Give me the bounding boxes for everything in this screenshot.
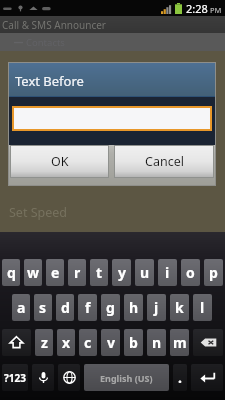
button[interactable]: n [147,329,166,356]
staticText: t [96,263,103,282]
button[interactable]: OK [11,146,108,177]
staticText: English (US) [100,372,153,384]
staticText: m [173,333,187,352]
button[interactable]: Cancel [115,146,213,177]
staticText: r [74,263,81,282]
staticText: z [41,333,48,352]
staticText: . [178,368,182,387]
staticText: h [129,298,139,317]
staticText: q [7,263,16,282]
staticText: f [85,298,91,317]
button[interactable]: w [24,259,42,286]
button[interactable]: Change keyboard language [58,364,80,391]
staticText: Cancel [145,153,184,170]
button[interactable]: d [56,294,74,321]
button[interactable]: h [124,294,143,321]
staticText: b [129,333,138,352]
button[interactable]: Delete [193,329,223,356]
button[interactable]: q [2,259,20,286]
staticText: l [200,298,205,317]
button[interactable]: e [46,259,64,286]
staticText: k [175,298,184,317]
button[interactable]: Voice input [32,364,54,391]
button[interactable]: p [204,259,223,286]
button[interactable]: b [124,329,143,356]
button[interactable]: u [135,259,154,286]
button[interactable]: Text Before [9,63,215,97]
staticText: o [186,263,195,282]
staticText: s [39,298,47,317]
staticText: PM [210,5,222,15]
button[interactable]: v [101,329,120,356]
button[interactable]: z [35,329,53,356]
staticText: v [107,333,115,352]
button[interactable]: c [79,329,97,356]
button[interactable]: Shift [2,329,31,356]
staticText: p [209,263,218,282]
staticText: Contacts [26,36,65,49]
staticText: a [17,298,26,317]
button[interactable]: Contacts [14,36,65,49]
staticText: g [106,298,115,317]
staticText: n [152,333,162,352]
button[interactable]: x [57,329,75,356]
button[interactable]: i [158,259,177,286]
staticText: e [51,263,60,282]
button[interactable]: m [170,329,189,356]
button[interactable]: t [90,259,108,286]
button[interactable]: o [181,259,200,286]
button[interactable]: k [170,294,189,321]
button[interactable]: s [34,294,52,321]
button[interactable]: Call & SMS Announcer [0,16,225,33]
button[interactable]: j [147,294,166,321]
staticText: Call & SMS Announcer [2,18,106,32]
staticText: j [154,298,159,317]
staticText: w [27,263,39,282]
button[interactable]: Enter [191,364,223,391]
staticText: y [118,263,126,282]
button[interactable]: g [101,294,120,321]
staticText: 2:28 [186,1,208,16]
staticText: Set Speed [9,204,68,221]
button[interactable]: English (US) [84,364,169,391]
staticText: d [61,298,70,317]
staticText: OK [51,153,69,170]
button[interactable]: a [12,294,30,321]
button[interactable]: f [78,294,97,321]
staticText: u [140,263,150,282]
staticText: Text Before [15,72,84,90]
staticText: ?123 [4,371,26,385]
staticText: x [62,333,71,352]
button[interactable]: y [112,259,131,286]
button[interactable]: l [193,294,212,321]
staticText: i [165,263,170,282]
button[interactable]: . [173,364,187,391]
staticText: c [84,333,92,352]
button[interactable]: ?123 [2,364,28,391]
button[interactable]: r [68,259,86,286]
